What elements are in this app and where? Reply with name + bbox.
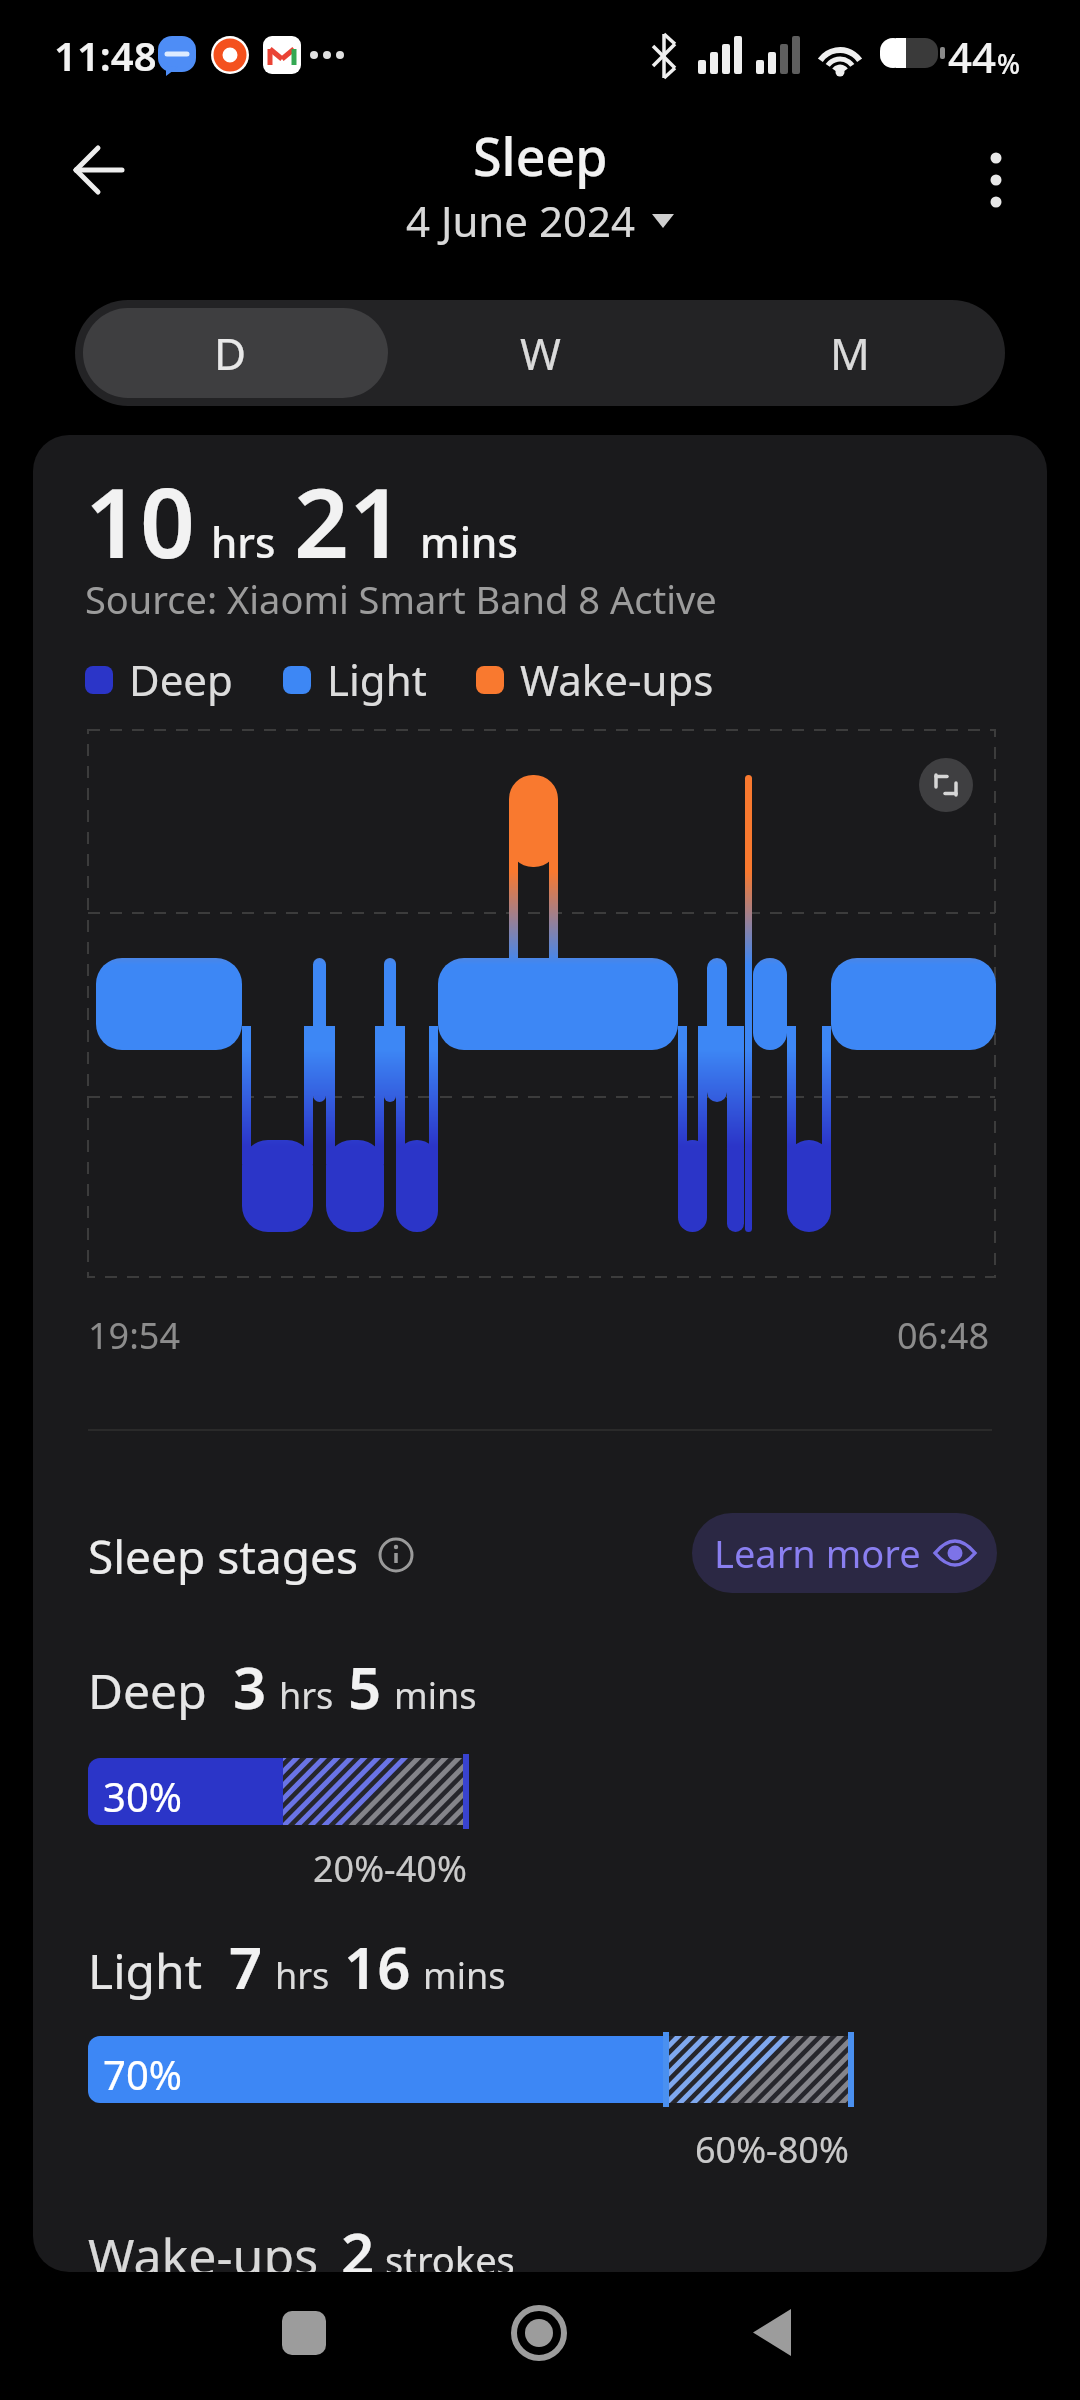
staticText: 10 [85,455,195,586]
staticText: 20%-40% [313,1844,467,1893]
staticText: 70% [103,2047,182,2101]
staticText: % [997,45,1021,82]
staticText: strokes [385,2234,515,2272]
staticText: 16 [344,1927,411,2006]
staticText: 2 [341,2213,375,2272]
staticText: hrs [211,513,276,570]
staticText: 11:48 [54,28,157,82]
staticText: mins [394,1671,477,1720]
staticText: D [214,323,247,383]
button[interactable] [58,132,138,208]
staticText: hrs [279,1671,334,1720]
staticText: 4 June 2024 [406,192,636,249]
staticText: 44 [948,28,997,85]
button[interactable]: D [75,300,385,406]
button[interactable] [740,2301,804,2365]
button[interactable]: W [385,300,695,406]
button[interactable]: M [695,300,1005,406]
staticText: M [830,323,870,383]
staticText: 7 [229,1927,263,2006]
staticText: Sleep stages [88,1525,358,1588]
staticText: mins [423,1951,506,2000]
staticText: Wake-ups [520,651,714,708]
button[interactable] [507,2301,571,2365]
staticText: Source: Xiaomi Smart Band 8 Active [85,573,717,625]
staticText: W [520,323,561,383]
button[interactable]: 4 June 2024 [406,192,674,249]
staticText: 21 [294,455,404,586]
staticText: Wake-ups [88,2222,319,2272]
button[interactable] [966,140,1026,220]
staticText: Deep [88,1658,207,1723]
staticText: 30% [103,1769,182,1823]
staticText: 19:54 [88,1311,181,1360]
staticText: Sleep [473,120,608,191]
button[interactable] [272,2301,336,2365]
staticText: Light [327,651,427,708]
staticText: 06:48 [897,1311,990,1360]
staticText: mins [420,513,518,570]
button[interactable]: Learn more [692,1513,997,1593]
staticText: Deep [129,651,233,708]
staticText: 3 [233,1647,267,1726]
staticText: hrs [275,1951,330,2000]
staticText: Learn more [714,1527,921,1579]
staticText: Light [88,1938,203,2003]
staticText: 60%-80% [695,2125,849,2174]
staticText: 5 [348,1647,382,1726]
